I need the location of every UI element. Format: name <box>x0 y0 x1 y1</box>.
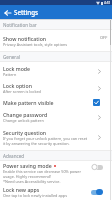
button[interactable]: Change password <box>0 109 112 125</box>
button[interactable]: Power saving mode <box>0 161 112 184</box>
button[interactable]: Show notification <box>0 30 112 51</box>
staticText: Make pattern visible <box>3 99 54 106</box>
staticText: usage. Highly recommend! <box>3 174 51 179</box>
staticText: Notification bar <box>3 22 37 28</box>
staticText: Power saving mode <box>3 162 52 169</box>
staticText: One tap to lock newly installed apps <box>3 193 68 198</box>
staticText: Privacy Assistant tools, style options <box>3 42 68 47</box>
staticText: Pattern <box>3 72 17 77</box>
staticText: Change password <box>3 111 48 118</box>
button[interactable]: Lock mode <box>0 62 112 80</box>
staticText: General <box>3 54 20 60</box>
staticText: Change unlock pattern <box>3 118 44 123</box>
staticText: Lock option <box>3 82 32 89</box>
staticText: *Need uses Accessibility service. <box>3 179 61 184</box>
staticText: Lock mode <box>3 65 31 72</box>
button[interactable]: Security question <box>0 125 112 150</box>
staticText: OFF <box>100 35 108 40</box>
staticText: 4:51 <box>104 1 111 5</box>
staticText: it by answering the security question. <box>3 141 70 146</box>
staticText: Lock new apps <box>3 186 40 193</box>
staticText: Show notification <box>3 35 47 42</box>
staticText: Security question <box>3 129 47 136</box>
button[interactable]: Lock option <box>0 80 112 96</box>
staticText: Settings <box>14 8 39 16</box>
staticText: Advanced <box>3 153 25 159</box>
staticText: Enable this service can decrease 50% pow… <box>3 169 81 174</box>
staticText: After screen is locked <box>3 89 41 94</box>
button[interactable]: Make pattern visible <box>0 96 112 109</box>
staticText: If you forget your unlock pattern, you c… <box>3 136 88 141</box>
button[interactable]: Lock new apps <box>0 184 112 200</box>
button[interactable] <box>2 6 13 19</box>
